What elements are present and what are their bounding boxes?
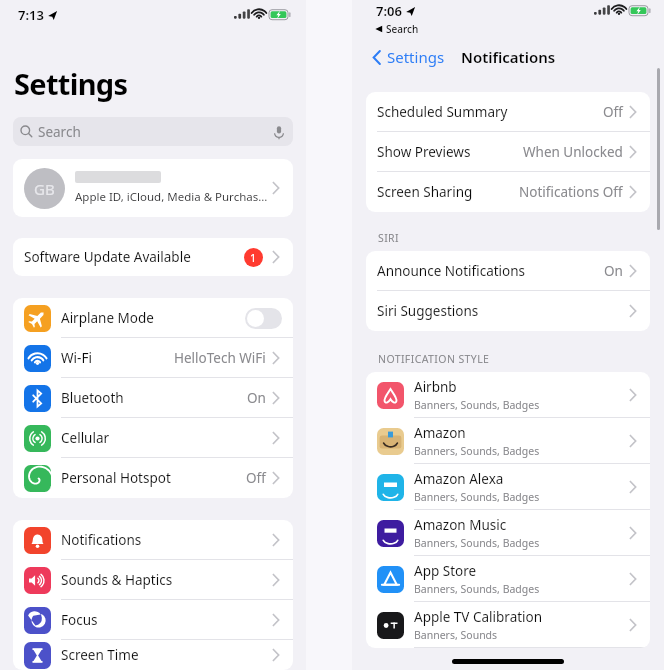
button[interactable]: Announce Notifications <box>366 251 650 291</box>
staticText: Banners, Sounds <box>414 628 498 642</box>
staticText: NOTIFICATION STYLE <box>378 352 490 366</box>
staticText: Airbnb <box>414 378 457 396</box>
button[interactable]: App Store <box>366 556 650 602</box>
staticText: Siri Suggestions <box>377 302 627 320</box>
button[interactable]: Airbnb <box>366 372 650 418</box>
staticText: Notifications <box>61 531 270 549</box>
staticText: Sounds & Haptics <box>61 571 270 589</box>
staticText: Airplane Mode <box>61 309 245 327</box>
staticText: SIRI <box>378 231 400 245</box>
button[interactable]: Show Previews <box>366 132 650 172</box>
button[interactable]: Wi-Fi <box>13 338 293 378</box>
staticText: Banners, Sounds, Badges <box>414 490 540 504</box>
staticText: Notifications <box>461 47 556 67</box>
button[interactable]: GB <box>13 159 293 217</box>
button[interactable]: Amazon <box>366 418 650 464</box>
staticText: When Unlocked <box>523 143 623 161</box>
staticText: Off <box>603 103 623 121</box>
staticText: Announce Notifications <box>377 262 604 280</box>
staticText: Banners, Sounds, Badges <box>414 444 540 458</box>
staticText: Amazon Alexa <box>414 470 504 488</box>
button[interactable]: Siri Suggestions <box>366 291 650 331</box>
staticText: Bluetooth <box>61 389 247 407</box>
staticText: Banners, Sounds, Badges <box>414 582 540 596</box>
button[interactable]: Software Update Available <box>13 238 293 276</box>
staticText: Apple ID, iCloud, Media & Purchas… <box>75 189 268 205</box>
button[interactable]: Screen Time <box>13 640 293 670</box>
staticText: App Store <box>414 562 477 580</box>
staticText: Search <box>386 22 419 36</box>
staticText: Scheduled Summary <box>377 103 603 121</box>
button[interactable]: Apple TV Calibration <box>366 602 650 648</box>
staticText: Notifications Off <box>519 183 623 201</box>
staticText: Screen Time <box>61 646 270 664</box>
button[interactable]: Amazon Alexa <box>366 464 650 510</box>
staticText: Personal Hotspot <box>61 469 246 487</box>
button[interactable]: Back to Search <box>375 22 419 36</box>
staticText: Off <box>246 469 266 487</box>
staticText: 7:13 <box>18 6 44 24</box>
staticText: Amazon <box>414 424 466 442</box>
button[interactable]: Screen Sharing <box>366 172 650 212</box>
button[interactable]: Airplane Mode <box>13 298 293 338</box>
button[interactable]: Search <box>13 117 293 146</box>
staticText: Wi-Fi <box>61 349 174 367</box>
staticText: Banners, Sounds, Badges <box>414 398 540 412</box>
staticText: Settings <box>387 47 445 67</box>
staticText: Search <box>38 123 81 141</box>
staticText: GB <box>34 179 55 199</box>
button[interactable]: Bluetooth <box>13 378 293 418</box>
staticText: Show Previews <box>377 143 523 161</box>
button[interactable]: Sounds & Haptics <box>13 560 293 600</box>
button[interactable]: Amazon Music <box>366 510 650 556</box>
button[interactable]: Cellular <box>13 418 293 458</box>
button[interactable]: Focus <box>13 600 293 640</box>
staticText: 7:06 <box>376 2 402 20</box>
staticText: HelloTech WiFi <box>174 349 266 367</box>
staticText: 1 <box>250 250 257 265</box>
staticText: On <box>604 262 623 280</box>
button[interactable]: Settings <box>370 47 445 67</box>
staticText: Screen Sharing <box>377 183 519 201</box>
button[interactable]: Personal Hotspot <box>13 458 293 498</box>
staticText: Settings <box>14 64 128 103</box>
staticText: Banners, Sounds, Badges <box>414 536 540 550</box>
button[interactable]: Notifications <box>13 520 293 560</box>
staticText: Focus <box>61 611 270 629</box>
staticText: Apple TV Calibration <box>414 608 543 626</box>
staticText: Cellular <box>61 429 270 447</box>
button[interactable]: Scheduled Summary <box>366 92 650 132</box>
staticText: On <box>247 389 266 407</box>
staticText: Amazon Music <box>414 516 507 534</box>
staticText: Software Update Available <box>24 248 244 266</box>
